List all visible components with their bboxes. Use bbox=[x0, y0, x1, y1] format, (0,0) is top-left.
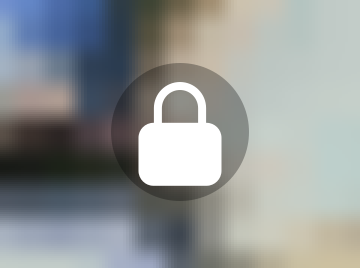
button[interactable]: Content locked bbox=[111, 63, 249, 201]
